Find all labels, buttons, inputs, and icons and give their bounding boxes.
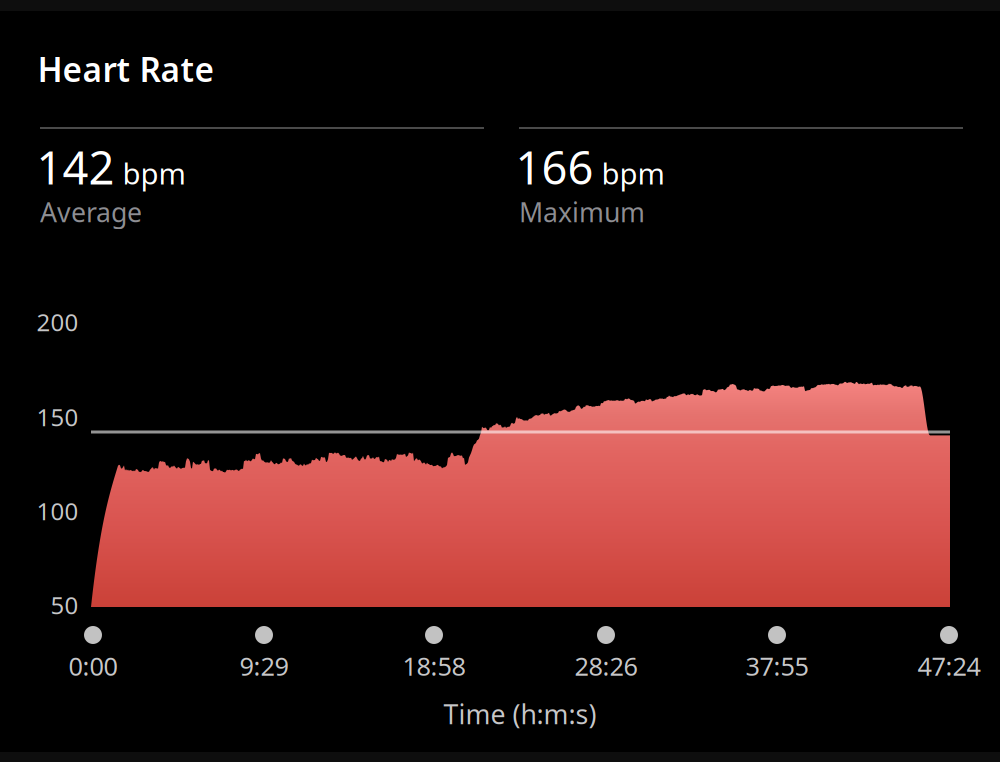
staticText: 166	[515, 137, 593, 197]
staticText: Time (h:m:s)	[443, 696, 596, 732]
staticText: 200	[36, 306, 78, 338]
staticText: 142	[36, 137, 114, 197]
staticText: 50	[50, 589, 78, 621]
button[interactable]: 142	[0, 0, 1000, 762]
button[interactable]: 166	[0, 0, 1000, 762]
staticText: 0:00	[68, 649, 117, 683]
staticText: Maximum	[519, 194, 645, 230]
staticText: 150	[36, 401, 78, 433]
staticText: Heart Rate	[37, 47, 214, 91]
staticText: 28:26	[574, 649, 637, 683]
staticText: bpm	[122, 154, 185, 193]
staticText: 9:29	[239, 649, 288, 683]
staticText: 100	[36, 495, 78, 527]
staticText: 18:58	[402, 649, 465, 683]
staticText: Average	[40, 194, 142, 230]
staticText: 37:55	[745, 649, 808, 683]
staticText: 47:24	[917, 649, 980, 683]
staticText: bpm	[601, 154, 664, 193]
